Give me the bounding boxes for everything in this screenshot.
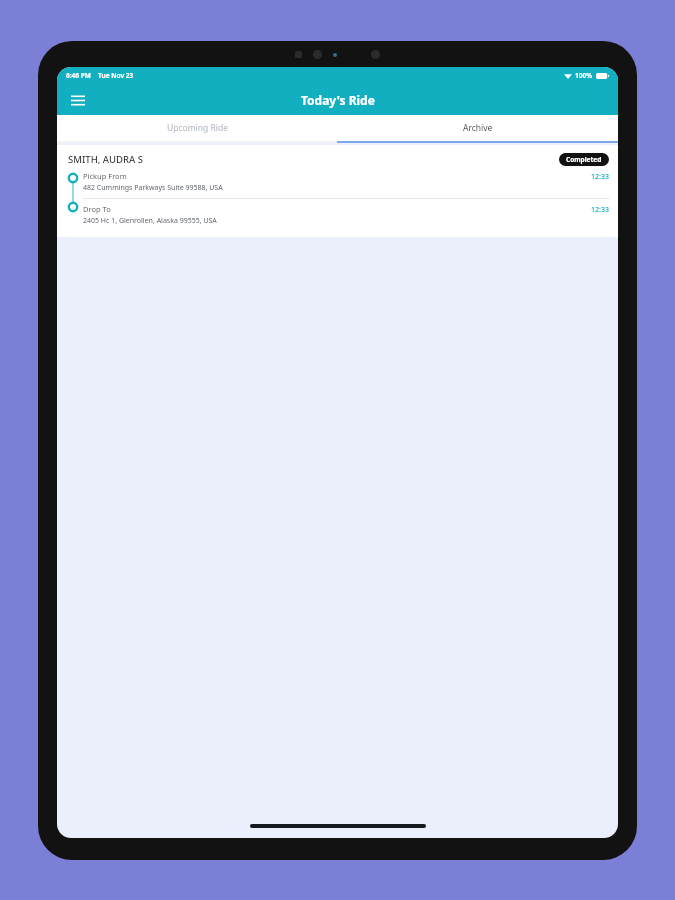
button[interactable]: SMITH, AUDRA S (57, 145, 618, 237)
staticText: 2405 Hc 1, Glenrollen, Alaska 99555, USA (83, 216, 217, 226)
staticText: Pickup From (83, 171, 127, 181)
staticText: Completed (566, 155, 602, 164)
staticText: 6:46 PM (66, 71, 91, 80)
staticText: Tue Nov 23 (98, 71, 134, 80)
staticText: 100% (575, 71, 593, 80)
staticText: Archive (463, 122, 493, 134)
staticText: 482 Cummings Parkways Suite 99588, USA (83, 183, 223, 193)
staticText: 12:33 (591, 205, 609, 215)
staticText: Today's Ride (301, 92, 375, 108)
staticText: Upcoming Ride (167, 122, 228, 134)
button[interactable]: Archive (337, 115, 618, 141)
button[interactable]: Upcoming Ride (57, 115, 337, 141)
button[interactable]: Open navigation menu (65, 87, 91, 113)
staticText: 12:33 (591, 172, 609, 182)
staticText: Drop To (83, 204, 111, 214)
staticText: SMITH, AUDRA S (68, 153, 143, 166)
